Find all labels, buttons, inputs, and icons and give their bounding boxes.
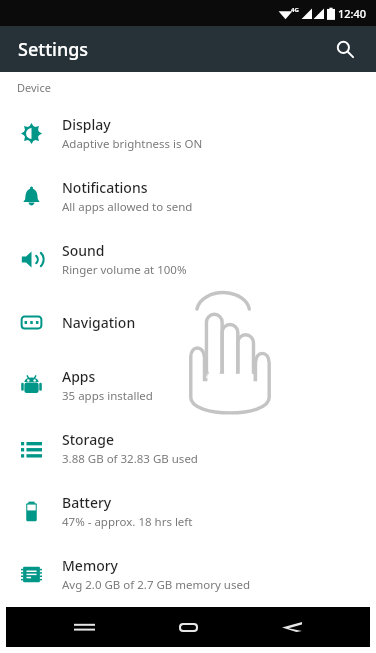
staticText: Battery [62,493,112,512]
staticText: Sound [62,241,105,260]
staticText: 35 apps installed [62,388,153,404]
staticText: All apps allowed to send [62,199,193,215]
button[interactable]: Recents [58,607,110,647]
staticText: Avg 2.0 GB of 2.7 GB memory used [62,577,251,593]
staticText: Memory [62,556,119,575]
staticText: Adaptive brightness is ON [62,136,203,152]
staticText: Device [17,80,51,95]
staticText: Navigation [62,313,136,332]
button[interactable]: Storage [0,417,376,480]
button[interactable]: Sound [0,228,376,291]
button[interactable]: Search [327,31,363,67]
button[interactable]: Display [0,102,376,165]
staticText: 4G [291,6,299,14]
button[interactable]: Navigation [0,291,376,354]
button[interactable]: Apps [0,354,376,417]
staticText: Ringer volume at 100% [62,262,187,278]
staticText: 12:40 [338,6,367,21]
staticText: 47% - approx. 18 hrs left [62,514,193,530]
staticText: Notifications [62,178,148,197]
staticText: Display [62,115,111,134]
button[interactable]: Home [162,607,214,647]
button[interactable]: Back [266,607,318,647]
button[interactable]: Battery [0,480,376,543]
staticText: Storage [62,430,114,449]
staticText: Apps [62,367,96,386]
button[interactable]: Memory [0,543,376,606]
staticText: 3.88 GB of 32.83 GB used [62,451,198,467]
staticText: Settings [18,37,89,62]
button[interactable]: Notifications [0,165,376,228]
